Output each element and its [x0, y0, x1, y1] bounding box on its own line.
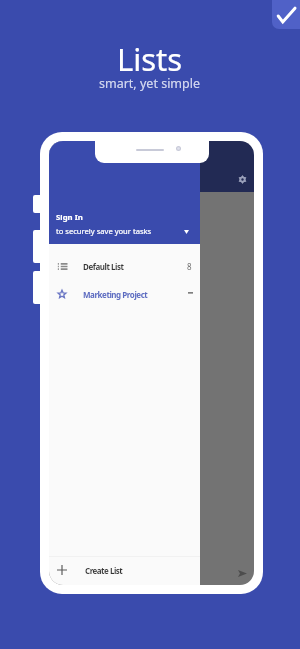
button[interactable]: Default List [49, 252, 200, 280]
button[interactable]: Send [231, 563, 253, 585]
staticText: Marketing Project [83, 289, 188, 300]
staticText: smart, yet simple [99, 75, 201, 92]
button[interactable]: Expand accounts [177, 226, 193, 242]
staticText: to securely save your tasks [56, 226, 152, 236]
button[interactable]: Selected [272, 0, 300, 29]
button[interactable]: Marketing Project [49, 280, 200, 308]
staticText: Create List [85, 565, 123, 576]
staticText: 8 [187, 261, 192, 272]
staticText: Lists [117, 38, 183, 80]
button[interactable]: Create List [49, 557, 200, 583]
staticText: Default List [83, 261, 187, 272]
staticText: Sign In [56, 212, 83, 223]
button[interactable]: Settings [228, 165, 252, 189]
